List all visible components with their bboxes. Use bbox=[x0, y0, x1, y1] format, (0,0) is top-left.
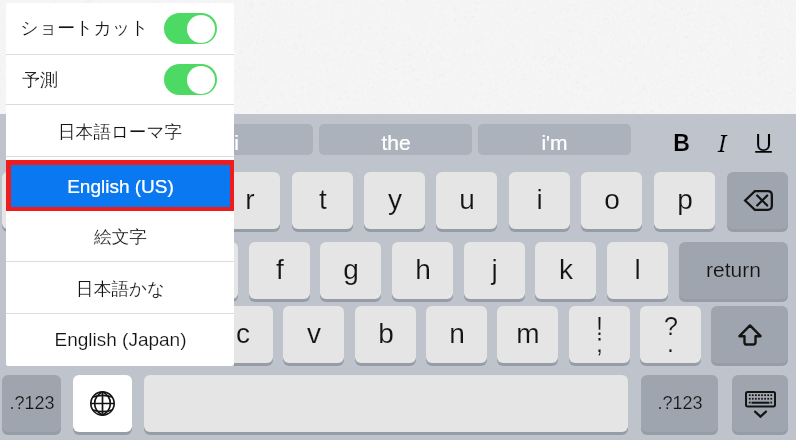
staticText: English (Japan) bbox=[54, 329, 187, 350]
button[interactable]: ! bbox=[569, 306, 630, 363]
staticText: f bbox=[276, 254, 284, 285]
button[interactable]: m bbox=[497, 306, 558, 363]
staticText: . bbox=[667, 329, 674, 357]
button[interactable]: ? bbox=[640, 306, 701, 363]
button[interactable]: B bbox=[664, 127, 698, 158]
button[interactable]: i bbox=[160, 124, 313, 155]
button[interactable]: U bbox=[746, 127, 780, 158]
staticText: y bbox=[388, 184, 402, 215]
staticText: k bbox=[559, 254, 573, 285]
staticText: ? bbox=[664, 312, 678, 340]
staticText: s bbox=[130, 254, 144, 285]
button[interactable]: 絵文字 bbox=[6, 209, 234, 261]
button[interactable]: i bbox=[509, 172, 570, 229]
button[interactable]: p bbox=[654, 172, 715, 229]
staticText: 予測 bbox=[22, 69, 58, 92]
staticText: a bbox=[57, 254, 73, 285]
staticText: b bbox=[378, 318, 394, 349]
staticText: q bbox=[25, 184, 41, 215]
button[interactable]: c bbox=[212, 306, 273, 363]
staticText: x bbox=[164, 318, 178, 349]
staticText: m bbox=[516, 318, 540, 349]
staticText: English (US) bbox=[67, 172, 174, 193]
staticText: U bbox=[755, 130, 772, 156]
button[interactable]: Hide keyboard bbox=[732, 375, 788, 432]
staticText: z bbox=[93, 318, 107, 349]
staticText: w bbox=[94, 184, 115, 215]
button[interactable]: f bbox=[249, 242, 310, 299]
button[interactable]: Toggle bbox=[164, 13, 217, 44]
staticText: B bbox=[673, 130, 690, 156]
button[interactable]: b bbox=[355, 306, 416, 363]
staticText: i'm bbox=[541, 131, 568, 154]
staticText: ショートカット bbox=[20, 17, 149, 40]
staticText: return bbox=[706, 258, 761, 281]
staticText: i bbox=[536, 184, 543, 215]
button[interactable]: d bbox=[177, 242, 238, 299]
staticText: c bbox=[236, 318, 250, 349]
staticText: .?123 bbox=[657, 393, 703, 413]
button[interactable]: English (US) bbox=[6, 160, 234, 211]
button[interactable]: o bbox=[581, 172, 642, 229]
staticText: h bbox=[415, 254, 431, 285]
button[interactable]: I bbox=[705, 127, 739, 158]
button[interactable]: i'm bbox=[478, 124, 631, 155]
button[interactable]: u bbox=[436, 172, 497, 229]
staticText: ! bbox=[596, 312, 603, 340]
staticText: j bbox=[491, 254, 498, 285]
staticText: u bbox=[459, 184, 475, 215]
button[interactable]: English (Japan) bbox=[6, 313, 234, 365]
staticText: p bbox=[677, 184, 693, 215]
button[interactable]: h bbox=[392, 242, 453, 299]
button[interactable]: I bbox=[7, 124, 154, 155]
button[interactable]: .?123 bbox=[641, 375, 718, 432]
button[interactable]: j bbox=[464, 242, 525, 299]
staticText: English (US) bbox=[67, 176, 174, 197]
button[interactable]: r bbox=[219, 172, 280, 229]
button[interactable]: k bbox=[535, 242, 596, 299]
button[interactable]: Backspace bbox=[727, 172, 788, 229]
staticText: the bbox=[381, 131, 411, 154]
staticText: t bbox=[319, 184, 327, 215]
button[interactable]: a bbox=[34, 242, 95, 299]
button[interactable]: l bbox=[607, 242, 668, 299]
button[interactable]: w bbox=[74, 172, 135, 229]
staticText: g bbox=[343, 254, 359, 285]
button[interactable]: v bbox=[283, 306, 344, 363]
staticText: v bbox=[307, 318, 321, 349]
button[interactable]: s bbox=[106, 242, 167, 299]
button[interactable]: Shift bbox=[711, 306, 788, 363]
staticText: r bbox=[245, 184, 255, 215]
staticText: l bbox=[634, 254, 641, 285]
staticText: I bbox=[78, 131, 84, 154]
staticText: 絵文字 bbox=[94, 226, 147, 248]
button[interactable]: return bbox=[679, 242, 788, 299]
button[interactable]: .?123 bbox=[2, 375, 61, 432]
button[interactable]: Toggle bbox=[164, 64, 217, 95]
staticText: 日本語かな bbox=[76, 278, 165, 300]
button[interactable]: t bbox=[292, 172, 353, 229]
button[interactable]: 日本語ローマ字 bbox=[6, 104, 234, 156]
button[interactable]: ショートカット bbox=[6, 3, 234, 54]
staticText: n bbox=[449, 318, 465, 349]
staticText: 日本語ローマ字 bbox=[58, 121, 182, 143]
button[interactable]: 予測 bbox=[6, 55, 234, 104]
staticText: e bbox=[170, 184, 186, 215]
button[interactable]: q bbox=[2, 172, 63, 229]
button[interactable]: g bbox=[320, 242, 381, 299]
button[interactable]: Change keyboard bbox=[73, 375, 132, 432]
staticText: d bbox=[200, 254, 216, 285]
button[interactable]: the bbox=[319, 124, 472, 155]
button[interactable]: English (US) bbox=[6, 156, 234, 208]
button[interactable]: x bbox=[140, 306, 201, 363]
button[interactable]: 日本語かな bbox=[6, 261, 234, 313]
staticText: o bbox=[604, 184, 620, 215]
button[interactable]: n bbox=[426, 306, 487, 363]
button[interactable]: e bbox=[147, 172, 208, 229]
staticText: i bbox=[234, 131, 239, 154]
button[interactable]: z bbox=[69, 306, 130, 363]
button[interactable]: y bbox=[364, 172, 425, 229]
staticText: ; bbox=[596, 329, 603, 357]
staticText: I bbox=[718, 127, 727, 158]
